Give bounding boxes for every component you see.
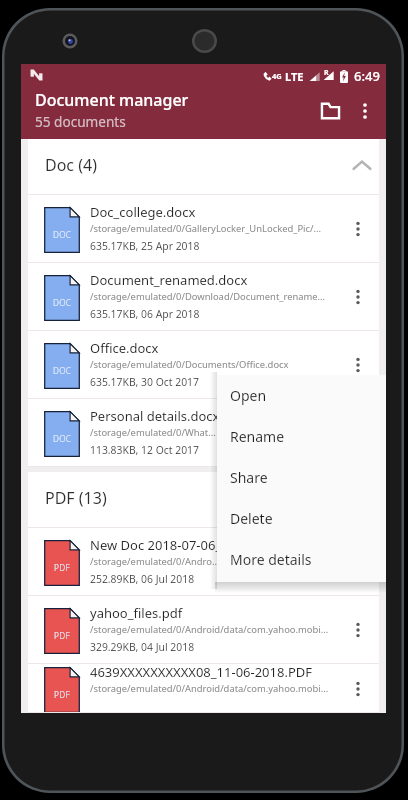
button[interactable]: PDF (13) [28, 472, 379, 528]
staticText: Open [230, 386, 267, 405]
button[interactable]: DOC [28, 331, 379, 399]
button[interactable]: Doc (4) [28, 139, 379, 195]
staticText: 4639XXXXXXXXXX08_11-06-2018.PDF [90, 663, 313, 681]
staticText: yahoo_files.pdf [90, 604, 183, 622]
button[interactable]: More details [217, 539, 386, 580]
staticText: R [324, 68, 329, 78]
staticText: 4G [272, 71, 282, 81]
staticText: Office.docx [90, 339, 159, 357]
staticText: /storage/emulated/0/Andro... [90, 555, 220, 568]
staticText: LTE [285, 69, 304, 84]
button[interactable]: Rename [217, 416, 386, 457]
button[interactable]: More options [343, 340, 373, 390]
staticText: DOC [53, 433, 72, 444]
button[interactable]: PDF [28, 664, 379, 713]
staticText: Delete [230, 509, 273, 528]
staticText: New Doc 2018-07-06_... [90, 536, 232, 554]
staticText: /storage/emulated/0/GalleryLocker_UnLock… [90, 222, 322, 235]
button[interactable]: Browse folders [309, 90, 351, 132]
button[interactable]: Delete [217, 498, 386, 539]
button[interactable]: More options [343, 605, 373, 655]
staticText: 635.17KB, 25 Apr 2018 [90, 239, 200, 253]
button[interactable]: PDF [28, 596, 379, 664]
button[interactable]: More options [343, 664, 373, 713]
staticText: /storage/emulated/0/Download/Document_re… [90, 290, 326, 303]
staticText: More details [230, 550, 312, 569]
staticText: PDF [54, 630, 70, 641]
staticText: Personal details.docx [90, 407, 220, 425]
button[interactable]: More options [343, 204, 373, 254]
staticText: 329.29KB, 04 Jul 2018 [90, 640, 195, 654]
button[interactable]: More options [343, 537, 373, 587]
staticText: Doc_college.docx [90, 203, 196, 221]
button[interactable]: Open [217, 375, 386, 416]
staticText: /storage/emulated/0/Android/data/com.yah… [90, 682, 329, 695]
staticText: 55 documents [35, 112, 126, 131]
staticText: 6:49 [354, 67, 380, 85]
staticText: PDF [54, 689, 70, 700]
staticText: PDF [54, 562, 70, 573]
button[interactable]: DOC [28, 263, 379, 331]
staticText: 635.17KB, 06 Apr 2018 [90, 307, 200, 321]
button[interactable]: More options [344, 90, 386, 132]
staticText: 113.83KB, 12 Oct 2017 [90, 443, 199, 457]
staticText: PDF (13) [45, 487, 107, 509]
staticText: /storage/emulated/0/Android/data/com.yah… [90, 623, 329, 636]
staticText: 635.17KB, 30 Oct 2017 [90, 375, 199, 389]
staticText: Document_renamed.docx [90, 271, 248, 289]
staticText: Share [230, 468, 268, 487]
staticText: 252.89KB, 06 Jul 2018 [90, 572, 195, 586]
staticText: DOC [53, 229, 72, 240]
button[interactable]: DOC [28, 399, 379, 467]
staticText: /storage/emulated/0/Documents/Office.doc… [90, 358, 289, 371]
button[interactable]: DOC [28, 195, 379, 263]
staticText: Rename [230, 427, 285, 446]
other: Collapse section [350, 153, 374, 177]
staticText: DOC [53, 297, 72, 308]
button[interactable]: More options [343, 272, 373, 322]
button[interactable]: Share [217, 457, 386, 498]
staticText: Document manager [35, 89, 189, 111]
staticText: DOC [53, 365, 72, 376]
staticText: /storage/emulated/0/What... [90, 426, 216, 439]
button[interactable]: PDF [28, 528, 379, 596]
staticText: Doc (4) [45, 154, 97, 176]
